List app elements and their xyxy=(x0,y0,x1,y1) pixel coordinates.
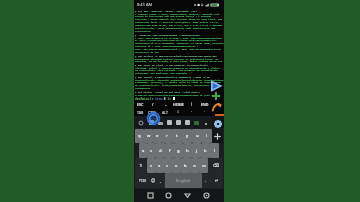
button[interactable]: ☺ xyxy=(149,173,157,188)
staticText: k xyxy=(204,148,207,154)
staticText: dev@pixel:~/proj$ ls xyxy=(135,97,172,100)
staticText: / xyxy=(152,102,154,107)
button[interactable]: Add xyxy=(209,89,222,102)
staticText: ESC xyxy=(137,102,144,107)
button[interactable]: x xyxy=(155,158,163,173)
button[interactable]: END xyxy=(198,100,211,108)
button[interactable]: y xyxy=(182,129,192,143)
button[interactable]: Emoji xyxy=(136,116,146,128)
staticText: $ git status --short && git diff --stat … xyxy=(135,90,200,93)
button[interactable]: Redo xyxy=(211,101,223,113)
button[interactable]: Assistant xyxy=(197,189,216,202)
staticText: h xyxy=(186,148,189,154)
button[interactable]: z xyxy=(147,158,155,173)
button[interactable]: Recents xyxy=(141,189,159,202)
button[interactable]: b xyxy=(181,158,190,173)
button[interactable]: t xyxy=(172,129,182,143)
staticText: HOME xyxy=(173,102,184,107)
button[interactable]: ?123 xyxy=(135,173,149,188)
button[interactable]: Move keyboard xyxy=(212,129,223,143)
staticText: x xyxy=(158,163,161,169)
staticText: – xyxy=(165,102,167,107)
button[interactable]: l xyxy=(210,143,219,158)
button[interactable]: ˂ xyxy=(185,108,198,116)
staticText: d xyxy=(159,148,162,154)
staticText: . xyxy=(205,178,207,184)
button[interactable]: Translate xyxy=(192,116,201,128)
staticText: ˂ xyxy=(191,110,193,115)
button[interactable]: m xyxy=(199,158,208,173)
button[interactable]: HOME xyxy=(172,100,185,108)
button[interactable]: English xyxy=(165,173,202,188)
button[interactable]: c xyxy=(163,158,172,173)
button[interactable]: Sticker xyxy=(165,116,174,128)
button[interactable]: Home xyxy=(159,189,178,202)
button[interactable]: r xyxy=(162,129,172,143)
button[interactable]: GIF xyxy=(156,116,165,128)
button[interactable]: TAB xyxy=(134,108,146,116)
button[interactable]: i xyxy=(202,129,212,143)
button[interactable]: / xyxy=(146,100,159,108)
button[interactable]: Run xyxy=(209,79,222,92)
button[interactable]: h xyxy=(183,143,192,158)
button[interactable]: CTRL xyxy=(146,108,159,116)
button[interactable]: f xyxy=(165,143,174,158)
staticText: t xyxy=(176,133,178,139)
button[interactable]: w xyxy=(144,129,153,143)
staticText: ⌷ xyxy=(177,110,180,114)
staticText: > Task :app:preBuild UP-TO-DATE > Task :… xyxy=(135,36,224,54)
staticText: w xyxy=(147,133,151,139)
button[interactable]: Clipboard xyxy=(174,116,183,128)
button[interactable]: ⌷ xyxy=(172,108,185,116)
staticText: $ git log --oneline --graph --decorate -… xyxy=(135,9,197,12)
button[interactable]: Voice input xyxy=(146,116,156,128)
staticText: , xyxy=(160,178,162,184)
button[interactable]: ESC xyxy=(134,100,146,108)
button[interactable]: e xyxy=(153,129,162,143)
button[interactable]: g xyxy=(174,143,183,158)
staticText: ?123 xyxy=(139,179,146,183)
button[interactable]: a xyxy=(139,143,147,158)
button[interactable]: Back xyxy=(178,189,197,202)
staticText: ˃ xyxy=(204,110,206,115)
staticText: e xyxy=(156,133,159,139)
staticText: g xyxy=(177,148,180,154)
button[interactable]: ❘ xyxy=(185,100,198,108)
staticText: r xyxy=(166,133,168,139)
staticText: END xyxy=(201,102,209,107)
button[interactable]: , xyxy=(157,173,165,188)
button[interactable]: ⌫ xyxy=(208,158,223,173)
button[interactable]: ⇧ xyxy=(135,158,147,173)
staticText: M app/src/main/java/com/example/ui/MainS… xyxy=(135,93,216,96)
staticText: CTRL xyxy=(148,110,157,115)
button[interactable]: n xyxy=(190,158,199,173)
button[interactable]: ALT xyxy=(159,108,172,116)
button[interactable]: v xyxy=(172,158,181,173)
button[interactable]: ↵ xyxy=(210,173,223,188)
staticText: ❘ xyxy=(190,102,194,106)
button[interactable]: Keyboard settings xyxy=(212,116,224,128)
staticText: f xyxy=(169,148,171,154)
staticText: * 7f3a9c1 (HEAD -> main, origin/main) fe… xyxy=(135,12,224,33)
button[interactable]: u xyxy=(192,129,202,143)
button[interactable]: j xyxy=(192,143,201,158)
button[interactable]: q xyxy=(135,129,144,143)
staticText: b xyxy=(184,163,187,169)
button[interactable]: – xyxy=(159,100,172,108)
staticText: ⌫ xyxy=(213,163,219,168)
staticText: ALT xyxy=(162,110,169,115)
button[interactable]: s xyxy=(147,143,156,158)
button[interactable]: k xyxy=(201,143,210,158)
staticText: m xyxy=(202,163,206,169)
staticText: $ adb install -r app/build/outputs/apk/d… xyxy=(135,54,217,57)
button[interactable]: d xyxy=(156,143,165,158)
staticText: c xyxy=(166,163,169,169)
button[interactable]: More xyxy=(201,116,210,128)
staticText: v xyxy=(175,163,178,169)
button[interactable]: ˃ xyxy=(198,108,211,116)
staticText: Performing Streamed Install Success 41 a… xyxy=(135,57,224,63)
staticText: n xyxy=(193,163,196,169)
staticText: z xyxy=(150,163,152,169)
button[interactable]: . xyxy=(202,173,210,188)
button[interactable]: Settings xyxy=(183,116,192,128)
